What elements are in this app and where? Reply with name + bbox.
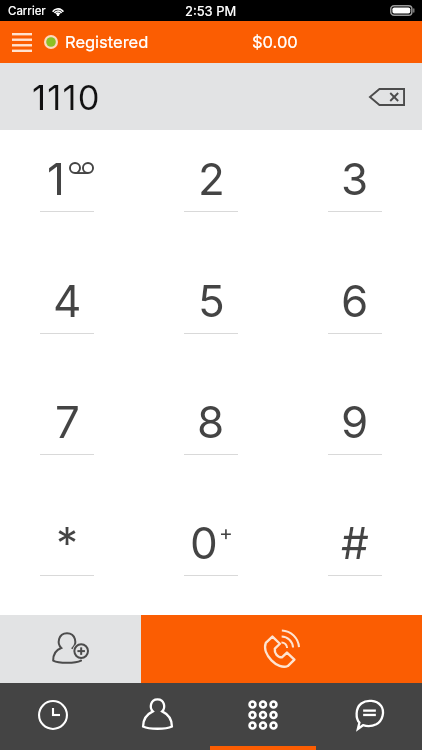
button[interactable]: Keypad — [210, 683, 316, 750]
staticText: 7 — [55, 395, 80, 448]
button[interactable]: Add contact — [0, 615, 141, 683]
staticText: Carrier — [8, 4, 46, 18]
button[interactable]: Backspace — [363, 73, 411, 121]
button[interactable]: 5 — [184, 252, 238, 373]
staticText: 1110 — [32, 77, 101, 119]
staticText: $0.00 — [252, 32, 298, 52]
button[interactable]: 4 — [40, 252, 94, 373]
staticText: + — [219, 520, 233, 545]
button[interactable]: * — [40, 494, 94, 615]
button[interactable]: 6 — [328, 252, 382, 373]
button[interactable]: Call — [141, 615, 422, 683]
button[interactable]: 1 — [40, 130, 94, 252]
staticText: 2 — [198, 152, 225, 205]
button[interactable]: Menu — [0, 21, 44, 63]
staticText: 3 — [341, 152, 369, 205]
staticText: 4 — [53, 274, 82, 327]
staticText: 2:53 PM — [185, 3, 237, 19]
button[interactable]: Messages — [316, 683, 422, 750]
staticText: * — [56, 516, 79, 569]
button[interactable]: # — [328, 494, 382, 615]
button[interactable]: 8 — [184, 373, 238, 494]
button[interactable]: 3 — [328, 130, 382, 252]
button[interactable]: 9 — [328, 373, 382, 494]
staticText: Registered — [65, 32, 149, 52]
button[interactable]: 0 — [184, 494, 238, 615]
staticText: 0 — [190, 516, 218, 569]
staticText: 1 — [47, 152, 65, 205]
button[interactable]: 7 — [40, 373, 94, 494]
staticText: # — [341, 516, 369, 569]
button[interactable]: Contacts — [105, 683, 210, 750]
button[interactable]: Registered — [44, 32, 149, 52]
button[interactable]: Recents — [0, 683, 105, 750]
staticText: 6 — [341, 274, 369, 327]
staticText: 5 — [198, 274, 225, 327]
button[interactable]: 2 — [184, 130, 238, 252]
staticText: 8 — [197, 395, 225, 448]
staticText: 9 — [341, 395, 369, 448]
